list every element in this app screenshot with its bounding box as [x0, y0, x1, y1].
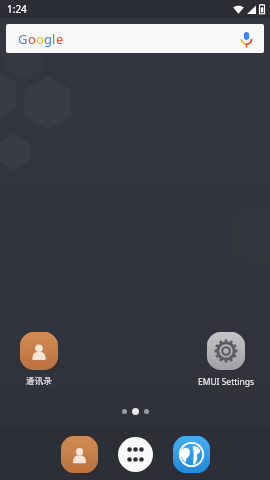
other: Voice search	[240, 31, 253, 47]
button[interactable]: 通讯录	[5, 332, 73, 387]
staticText: l	[52, 30, 56, 48]
staticText: 通讯录	[5, 376, 73, 387]
button[interactable]: All apps	[111, 430, 159, 478]
button[interactable]: EMUI Settings	[187, 332, 265, 388]
staticText: 1:24	[7, 2, 27, 16]
staticText: o	[36, 30, 44, 48]
staticText: g	[44, 30, 52, 48]
staticText: e	[56, 30, 64, 48]
button[interactable]: Contacts	[55, 430, 103, 478]
button[interactable]: Browser	[167, 430, 215, 478]
button[interactable]: G	[6, 24, 264, 53]
staticText: G	[18, 30, 28, 48]
staticText: o	[28, 30, 36, 48]
staticText: EMUI Settings	[187, 376, 265, 388]
